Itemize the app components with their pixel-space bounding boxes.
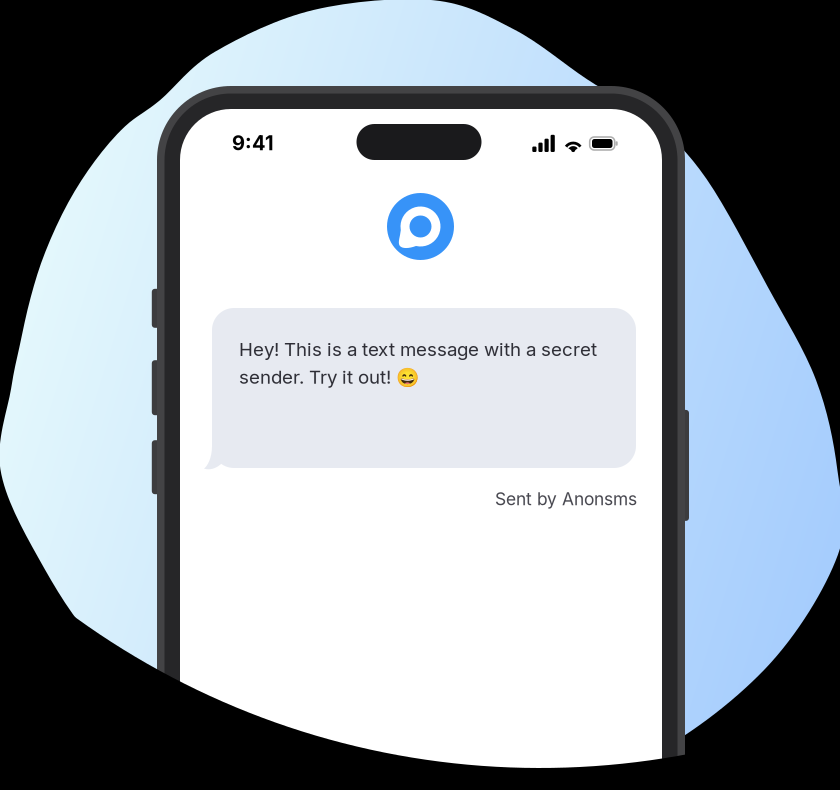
staticText: Sent by Anonsms	[495, 488, 637, 509]
staticText: sender. Try it out! 😄	[239, 366, 419, 388]
staticText: 9:41	[232, 131, 274, 155]
staticText: Hey! This is a text message with a secre…	[239, 338, 597, 361]
